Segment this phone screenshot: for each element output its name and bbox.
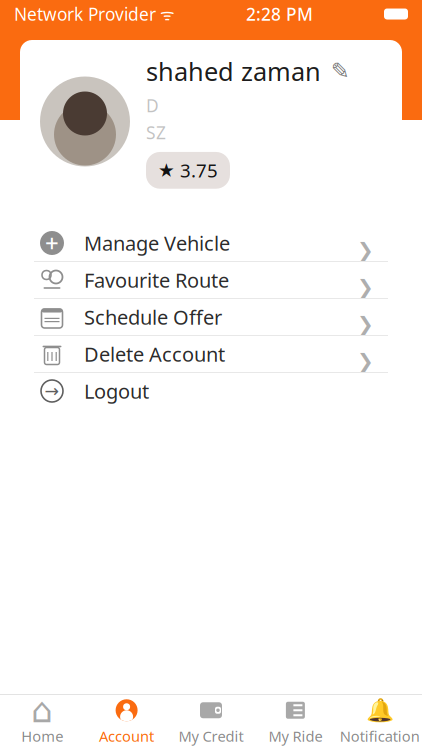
button[interactable]: Edit profile: [331, 58, 350, 84]
button[interactable]: →: [24, 373, 398, 409]
staticText: ❯: [357, 239, 374, 261]
button[interactable]: Account: [84, 695, 169, 750]
staticText: ★: [158, 160, 175, 181]
staticText: ❯: [357, 313, 374, 335]
button[interactable]: 🔔: [338, 695, 422, 750]
staticText: +: [45, 227, 59, 259]
staticText: Schedule Offer: [84, 304, 222, 330]
button[interactable]: My Ride: [253, 695, 338, 750]
staticText: Manage Vehicle: [84, 230, 230, 256]
staticText: Account: [99, 726, 154, 746]
button[interactable]: ⌂: [0, 695, 84, 750]
staticText: 2:28 PM: [246, 2, 313, 25]
staticText: Home: [21, 726, 63, 746]
staticText: Network Provider: [14, 2, 156, 25]
staticText: Logout: [84, 378, 149, 404]
staticText: Favourite Route: [84, 267, 229, 293]
staticText: →: [44, 381, 59, 401]
staticText: 3.75: [180, 158, 218, 183]
staticText: ❯: [357, 350, 374, 372]
button[interactable]: +: [24, 225, 398, 262]
staticText: My Ride: [268, 726, 322, 746]
button[interactable]: My Credit: [169, 695, 253, 750]
button[interactable]: Favourite Route: [24, 262, 398, 299]
staticText: ⌂: [31, 691, 53, 730]
staticText: ᯤ: [156, 3, 175, 25]
staticText: Delete Account: [84, 341, 225, 367]
staticText: D: [146, 94, 159, 117]
button[interactable]: Delete Account: [24, 336, 398, 373]
staticText: 🔔: [366, 697, 394, 723]
staticText: shahed zaman: [146, 54, 321, 88]
staticText: Notification: [340, 726, 420, 746]
staticText: ❯: [357, 276, 374, 298]
staticText: My Credit: [178, 726, 243, 746]
button[interactable]: Schedule Offer: [24, 299, 398, 336]
staticText: SZ: [146, 121, 166, 144]
staticText: ✎: [331, 58, 350, 84]
